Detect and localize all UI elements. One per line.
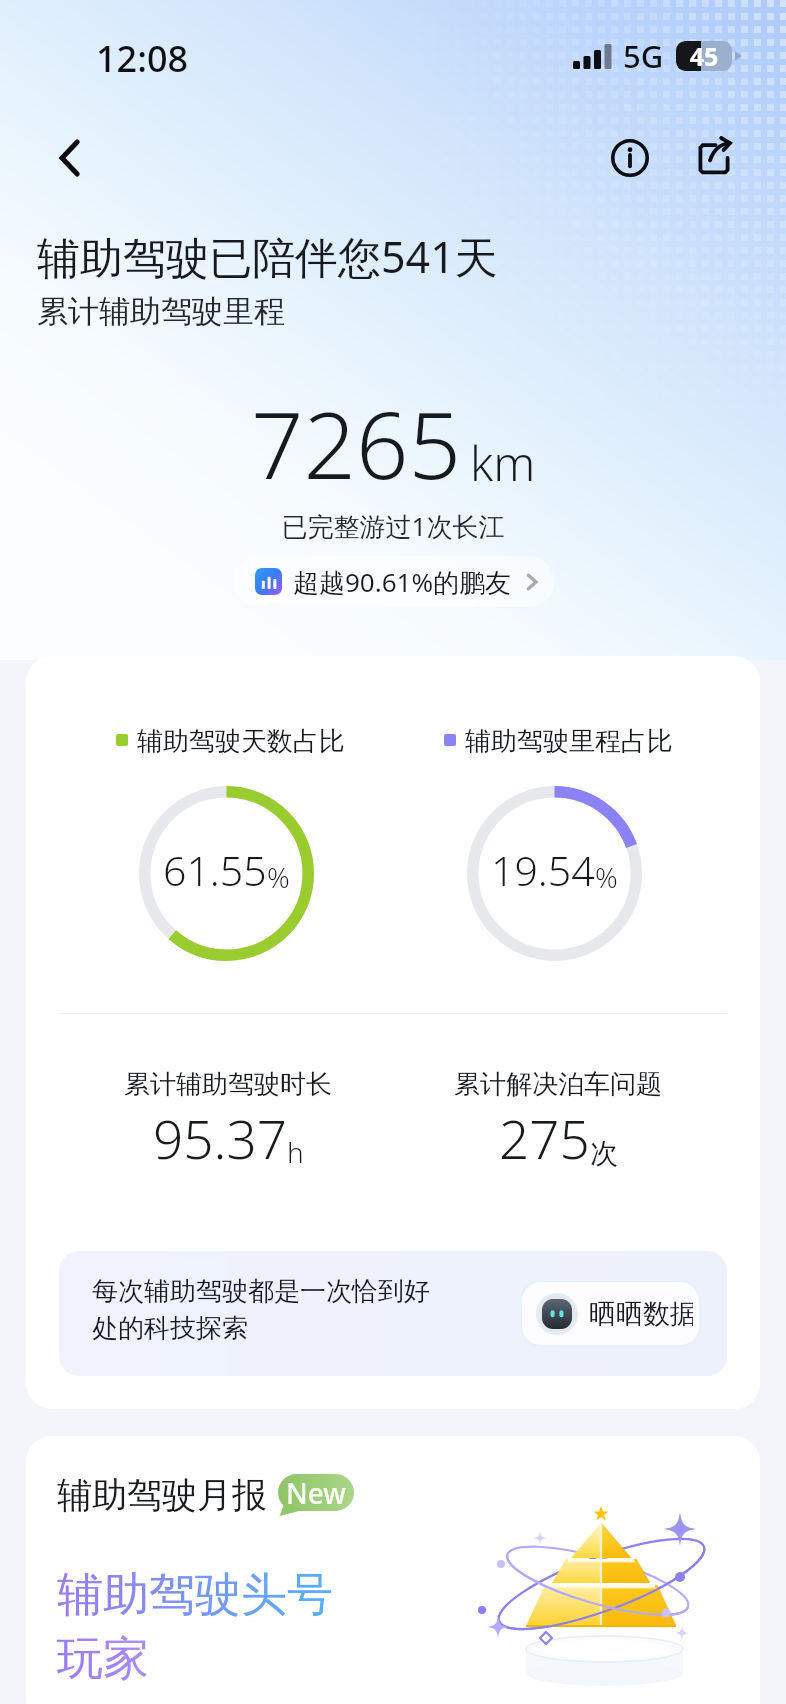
staticText: 超越90.61%的鹏友: [293, 564, 512, 600]
staticText: 玩家: [57, 1630, 149, 1688]
staticText: 辅助驾驶里程占比: [465, 725, 673, 755]
staticText: New: [286, 1474, 346, 1512]
staticText: h: [287, 1133, 304, 1171]
staticText: 每次辅助驾驶都是一次恰到好处的科技探索: [92, 1275, 437, 1344]
staticText: km: [470, 431, 536, 495]
staticText: 辅助驾驶头号: [57, 1566, 333, 1624]
button[interactable]: Share: [678, 122, 750, 194]
staticText: 累计辅助驾驶时长: [124, 1068, 332, 1101]
staticText: 95.37: [153, 1102, 287, 1174]
staticText: 275: [499, 1102, 590, 1174]
staticText: 已完整游过1次长江: [0, 508, 786, 544]
staticText: %: [595, 858, 618, 896]
staticText: 辅助驾驶天数占比: [137, 725, 345, 755]
staticText: 晒晒数据: [589, 1297, 693, 1331]
staticText: 累计解决泊车问题: [454, 1068, 662, 1101]
staticText: 次: [590, 1136, 618, 1171]
staticText: 5G: [623, 35, 664, 77]
staticText: 19.54: [491, 842, 595, 898]
staticText: %: [267, 858, 290, 896]
button[interactable]: 辅助驾驶月报: [26, 1436, 760, 1704]
staticText: 7265: [251, 381, 462, 506]
button[interactable]: 晒晒数据: [522, 1282, 699, 1345]
button[interactable]: 超越90.61%的鹏友: [233, 556, 554, 607]
button[interactable]: Info: [594, 122, 666, 194]
staticText: 辅助驾驶月报: [57, 1473, 267, 1517]
staticText: 辅助驾驶已陪伴您541天: [37, 227, 498, 286]
staticText: 12:08: [96, 34, 189, 83]
button[interactable]: Back: [34, 122, 106, 194]
staticText: 累计辅助驾驶里程: [37, 292, 285, 331]
staticText: 45: [676, 39, 732, 73]
staticText: 61.55: [163, 842, 267, 898]
